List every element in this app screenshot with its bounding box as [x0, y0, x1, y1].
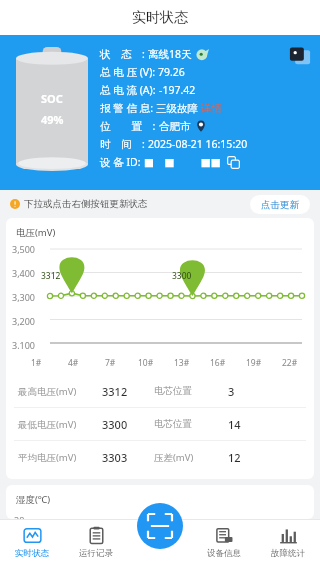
staticText: 3312 — [102, 384, 128, 399]
button[interactable]: 故障统计 — [256, 519, 320, 568]
button[interactable]: 扫一扫 — [137, 503, 183, 549]
staticText: 实时状态 — [132, 9, 188, 27]
staticText: 平均电压(mV) — [18, 451, 77, 464]
button[interactable]: 设备图片 — [288, 45, 312, 69]
button[interactable]: 实时状态 — [0, 519, 64, 568]
staticText: 详情 — [201, 102, 222, 115]
button[interactable]: 详情 — [201, 102, 222, 115]
button[interactable]: 最高电压(mV) — [6, 375, 314, 407]
staticText: 总 电 压 (V): — [100, 65, 158, 79]
staticText: 1# — [31, 357, 42, 369]
staticText: 最高电压(mV) — [18, 385, 77, 398]
staticText: 3303 — [102, 450, 128, 465]
staticText: 运行记录 — [79, 548, 113, 559]
staticText: 报 警 信 息: — [100, 101, 156, 115]
button[interactable]: 平均电压(mV) — [6, 441, 314, 473]
staticText: 设备信息 — [207, 548, 241, 559]
button[interactable]: 复制设备ID — [227, 156, 240, 169]
staticText: 14 — [228, 417, 241, 432]
staticText: 故障统计 — [271, 548, 305, 559]
staticText: 湿度(℃) — [16, 493, 51, 506]
staticText: -197.42 — [159, 83, 196, 97]
staticText: 79.26 — [158, 65, 185, 79]
other: 离线状态 — [196, 48, 209, 61]
other: 位置 — [195, 120, 207, 132]
staticText: 压差(mV) — [154, 451, 194, 464]
staticText: 点击更新 — [261, 199, 299, 211]
staticText: 总 电 流 (A): — [100, 83, 159, 97]
staticText: 电芯位置 — [154, 385, 192, 397]
staticText: 3,500 — [12, 243, 36, 255]
staticText: 13# — [174, 357, 190, 369]
staticText: 19# — [246, 357, 262, 369]
staticText: 3300 — [102, 417, 128, 432]
staticText: 状 态 : — [100, 47, 148, 61]
button[interactable]: 设备信息 — [192, 519, 256, 568]
staticText: 7# — [105, 357, 116, 369]
staticText: 最低电压(mV) — [18, 418, 77, 431]
staticText: 设 备 ID: — [100, 155, 144, 169]
staticText: 22# — [282, 357, 298, 369]
staticText: 2025-08-21 16:15:20 — [148, 137, 248, 151]
staticText: 三级故障 — [156, 102, 198, 115]
button[interactable]: 运行记录 — [64, 519, 128, 568]
staticText: 合肥市 — [159, 120, 191, 133]
staticText: 16# — [210, 357, 226, 369]
staticText: 3,400 — [12, 267, 36, 279]
staticText: 下拉或点击右侧按钮更新状态 — [24, 198, 148, 210]
staticText: 位 置 : — [100, 119, 159, 133]
staticText: 49% — [41, 112, 64, 127]
staticText: 12 — [228, 450, 241, 465]
staticText: 3,300 — [12, 291, 36, 303]
staticText: 离线18天 — [148, 47, 192, 61]
staticText: 3300 — [172, 270, 192, 282]
staticText: 28 — [14, 514, 25, 519]
staticText: 3312 — [41, 270, 61, 282]
staticText: 10# — [138, 357, 154, 369]
staticText: SOC — [41, 91, 63, 106]
button[interactable]: 最低电压(mV) — [6, 408, 314, 440]
staticText: 3,200 — [12, 315, 36, 327]
button[interactable]: 点击更新 — [250, 195, 310, 214]
staticText: 时 间 : — [100, 137, 148, 151]
staticText: 3 — [228, 384, 235, 399]
staticText: 4# — [68, 357, 79, 369]
staticText: 实时状态 — [15, 548, 49, 559]
staticText: 电芯位置 — [154, 418, 192, 430]
staticText: ■ ■ ■■ — [144, 155, 221, 169]
staticText: 电压(mV) — [16, 226, 56, 239]
staticText: 3,100 — [12, 339, 36, 349]
